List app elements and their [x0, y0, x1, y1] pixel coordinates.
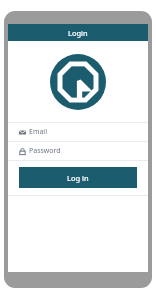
button[interactable]: Login — [8, 24, 148, 41]
button[interactable]: Log in — [19, 167, 137, 188]
other: App logo — [50, 54, 106, 110]
staticText: Login — [68, 28, 88, 38]
staticText: Log in — [67, 173, 89, 183]
button[interactable]: Email — [8, 123, 148, 141]
staticText: Email — [29, 127, 47, 137]
button[interactable]: Password — [8, 142, 148, 160]
staticText: Password — [29, 146, 61, 156]
